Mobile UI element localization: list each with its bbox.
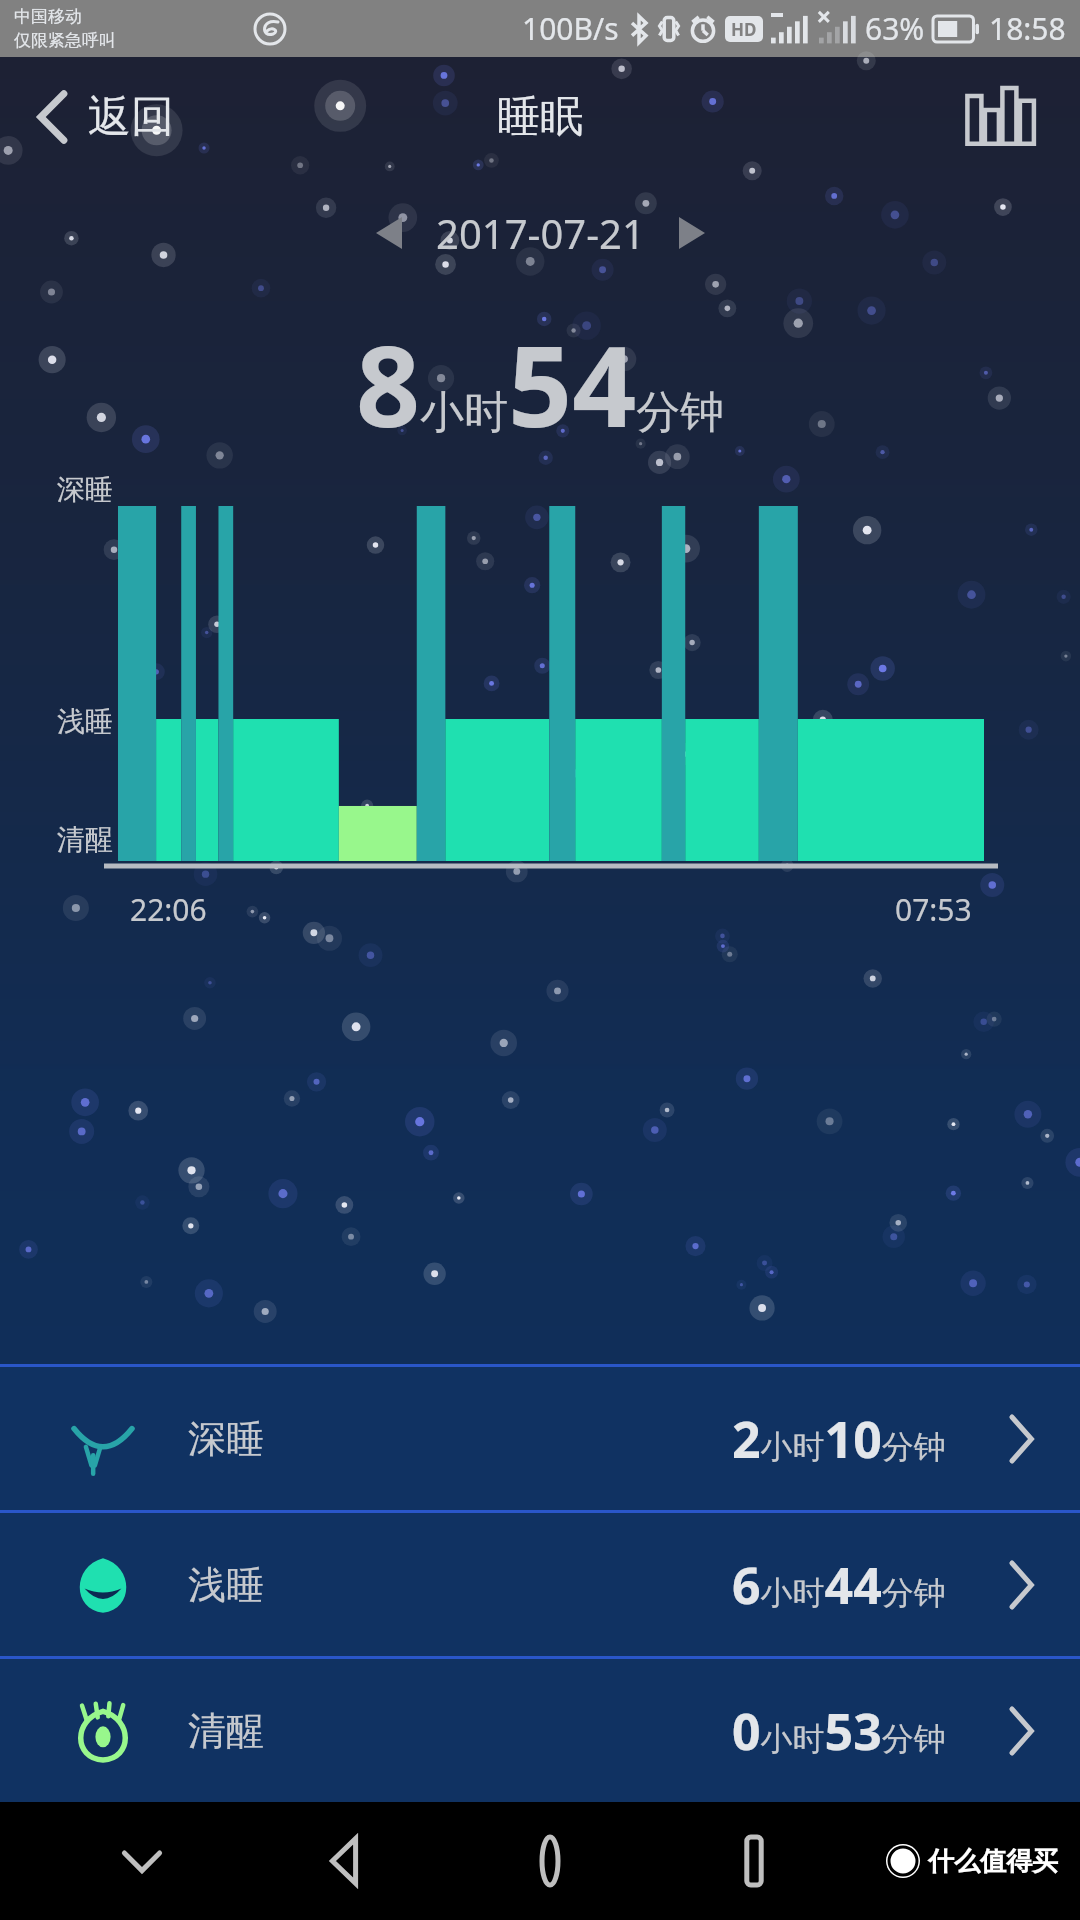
- staticText: 100B/s: [522, 8, 619, 49]
- staticText: 6小时44分钟: [732, 1551, 946, 1619]
- button[interactable]: 收起键盘: [40, 1802, 244, 1920]
- staticText: 睡眠: [497, 90, 583, 144]
- staticText: 中国移动: [14, 6, 82, 27]
- staticText: 深睡: [188, 1415, 264, 1463]
- staticText: 2017-07-21: [436, 206, 645, 260]
- staticText: HD: [731, 18, 757, 41]
- button[interactable]: 主屏幕: [448, 1802, 652, 1920]
- button[interactable]: 浅睡: [0, 1513, 1080, 1656]
- staticText: 8小时54分钟: [356, 307, 725, 460]
- button[interactable]: 前一天: [358, 199, 420, 267]
- staticText: 浅睡: [188, 1561, 264, 1609]
- button[interactable]: 深睡: [0, 1367, 1080, 1510]
- staticText: 0小时53分钟: [732, 1697, 946, 1765]
- button[interactable]: 返回: [0, 78, 198, 156]
- staticText: 22:06: [130, 889, 207, 930]
- staticText: 浅睡: [57, 704, 113, 739]
- button[interactable]: 最近任务: [652, 1802, 856, 1920]
- button[interactable]: 后一天: [661, 199, 723, 267]
- staticText: 18:58: [989, 8, 1066, 49]
- staticText: 63%: [865, 8, 925, 49]
- staticText: 清醒: [188, 1707, 264, 1755]
- staticText: 什么值得买: [928, 1845, 1058, 1878]
- staticText: 仅限紧急呼叫: [14, 30, 116, 51]
- button[interactable]: 统计图表: [922, 66, 1080, 168]
- staticText: 2小时10分钟: [732, 1405, 946, 1473]
- button[interactable]: 清醒: [0, 1659, 1080, 1802]
- staticText: 深睡: [57, 472, 113, 507]
- staticText: 清醒: [57, 822, 113, 857]
- button[interactable]: 返回: [244, 1802, 448, 1920]
- staticText: 07:53: [895, 889, 972, 930]
- staticText: 返回: [88, 90, 174, 144]
